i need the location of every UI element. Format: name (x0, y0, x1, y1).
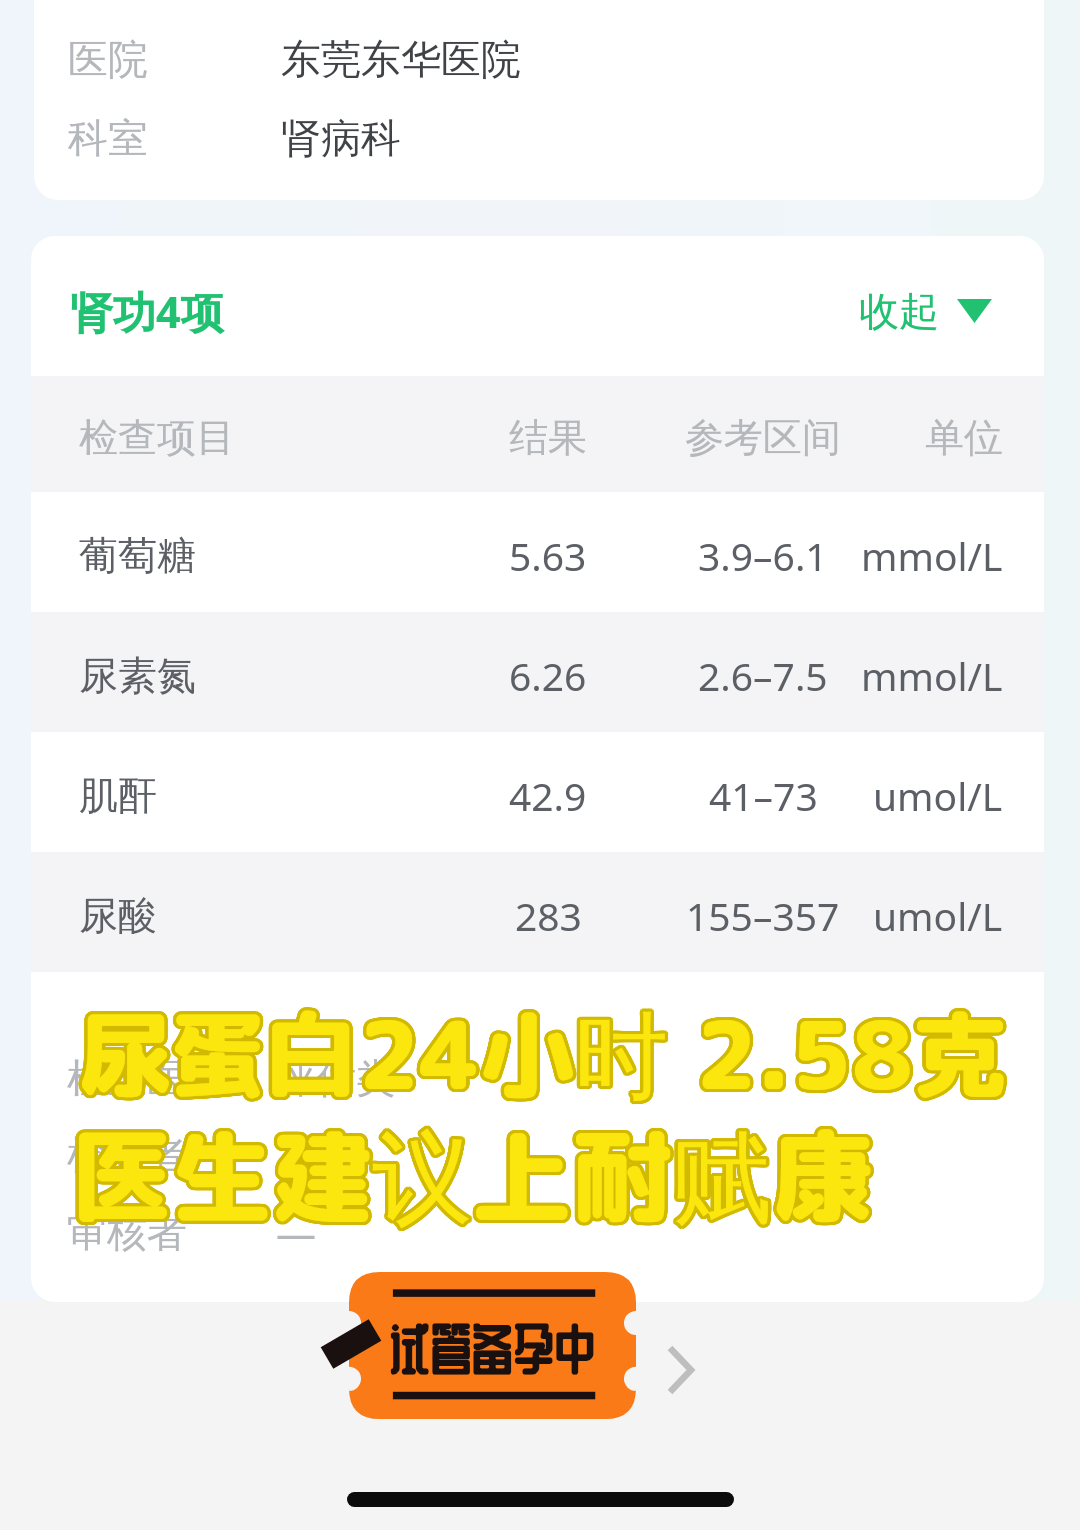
staticText: mmol/L (861, 529, 1003, 582)
button[interactable]: 肌酐 (31, 732, 1044, 852)
staticText: — (276, 1205, 316, 1259)
staticText: umol/L (873, 889, 1003, 942)
staticText: 收起 (859, 286, 939, 336)
button[interactable]: Next (639, 1328, 723, 1412)
staticText: 检验者 (67, 1130, 187, 1180)
staticText: 肾病科 (281, 113, 401, 163)
staticText: mmol/L (861, 649, 1003, 702)
staticText: 检查项目 (79, 413, 235, 462)
staticText: 审核者 (67, 1207, 187, 1257)
button[interactable]: 收起 (859, 286, 992, 336)
button[interactable]: 肾功4项 (31, 236, 1044, 376)
staticText: 单位 (925, 413, 1003, 462)
staticText: 283 (515, 889, 582, 942)
staticText: 评估类 (276, 1053, 396, 1103)
staticText: 5.63 (509, 529, 587, 582)
staticText: 医院 (68, 34, 148, 84)
staticText: 尿酸 (79, 891, 157, 940)
staticText: 试管备孕中 (389, 1320, 596, 1374)
staticText: 41–73 (709, 769, 818, 822)
staticText: 葡萄糖 (79, 531, 196, 580)
staticText: 参考区间 (685, 413, 841, 462)
staticText: umol/L (873, 769, 1003, 822)
staticText: 155–357 (686, 889, 840, 942)
staticText: 肌酐 (79, 771, 157, 820)
button[interactable]: 检查项目 (31, 376, 1044, 492)
button[interactable]: 葡萄糖 (31, 492, 1044, 612)
button[interactable]: 尿素氮 (31, 612, 1044, 732)
staticText: 科室 (68, 113, 148, 163)
staticText: 2.6–7.5 (698, 649, 828, 702)
staticText: 检查医生 (67, 1053, 227, 1103)
button[interactable]: 尿酸 (31, 852, 1044, 972)
staticText: 尿素氮 (79, 651, 196, 700)
staticText: 42.9 (509, 769, 587, 822)
staticText: 肾功4项 (70, 282, 224, 341)
staticText: 东莞东华医院 (281, 34, 521, 84)
button[interactable]: 试管备孕中 (349, 1272, 636, 1419)
staticText: 结果 (509, 413, 587, 462)
staticText: 6.26 (509, 649, 587, 702)
staticText: 3.9–6.1 (698, 529, 828, 582)
